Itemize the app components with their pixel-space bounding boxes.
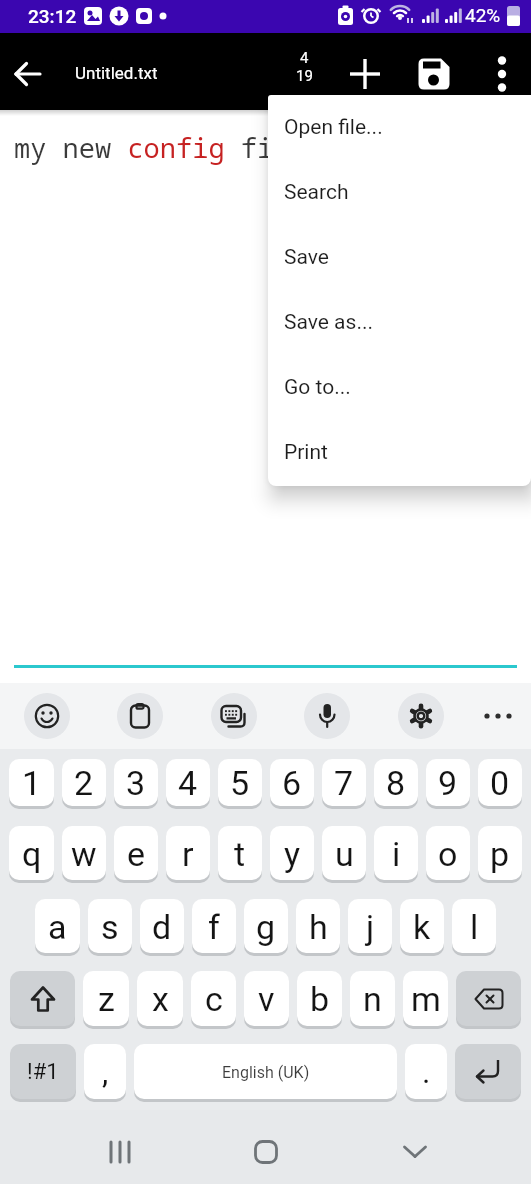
staticText: t bbox=[234, 834, 246, 874]
button[interactable] bbox=[456, 971, 521, 1027]
button[interactable]: k bbox=[400, 899, 444, 954]
staticText: u bbox=[335, 834, 354, 874]
button[interactable]: 8 bbox=[374, 759, 418, 807]
staticText: x bbox=[152, 979, 169, 1019]
staticText: j bbox=[366, 907, 375, 947]
button[interactable]: 0 bbox=[478, 759, 522, 807]
button[interactable] bbox=[398, 693, 444, 739]
staticText: d bbox=[152, 907, 172, 947]
button[interactable]: 4 bbox=[166, 759, 210, 807]
button[interactable]: 7 bbox=[322, 759, 366, 807]
staticText: p bbox=[490, 834, 510, 874]
staticText: o bbox=[438, 834, 458, 874]
button[interactable]: l bbox=[452, 899, 496, 954]
button[interactable] bbox=[24, 693, 70, 739]
button[interactable]: t bbox=[218, 826, 262, 881]
staticText: 4 bbox=[300, 49, 309, 67]
button[interactable]: , bbox=[84, 1044, 126, 1100]
staticText: l bbox=[470, 907, 479, 947]
button[interactable]: c bbox=[191, 971, 236, 1027]
button[interactable]: d bbox=[140, 899, 184, 954]
button[interactable]: b bbox=[297, 971, 342, 1027]
button[interactable] bbox=[117, 693, 163, 739]
staticText: Save bbox=[284, 245, 329, 270]
staticText: y bbox=[284, 834, 301, 874]
button[interactable] bbox=[96, 1128, 144, 1176]
button[interactable]: Go to... bbox=[268, 355, 531, 420]
button[interactable]: q bbox=[9, 826, 54, 881]
button[interactable]: w bbox=[62, 826, 106, 881]
button[interactable] bbox=[455, 1044, 521, 1100]
staticText: 42% bbox=[465, 4, 501, 26]
staticText: r bbox=[182, 834, 194, 874]
staticText: n bbox=[363, 979, 382, 1019]
button[interactable]: 9 bbox=[426, 759, 470, 807]
button[interactable]: a bbox=[35, 899, 80, 954]
button[interactable]: u bbox=[322, 826, 366, 881]
button[interactable]: Save bbox=[268, 225, 531, 290]
button[interactable]: z bbox=[83, 971, 129, 1027]
button[interactable] bbox=[10, 971, 75, 1027]
staticText: 3 bbox=[126, 763, 146, 803]
button[interactable] bbox=[475, 693, 521, 739]
staticText: e bbox=[127, 834, 146, 874]
button[interactable]: 5 bbox=[218, 759, 262, 807]
button[interactable]: g bbox=[244, 899, 288, 954]
staticText: , bbox=[102, 1053, 109, 1091]
button[interactable]: English (UK) bbox=[134, 1044, 397, 1100]
staticText: v bbox=[258, 979, 275, 1019]
staticText: 4 bbox=[178, 763, 198, 803]
staticText: i bbox=[392, 834, 401, 874]
button[interactable]: j bbox=[348, 899, 392, 954]
button[interactable]: Save as... bbox=[268, 290, 531, 355]
button[interactable] bbox=[211, 693, 257, 739]
button[interactable]: y bbox=[270, 826, 314, 881]
button[interactable]: v bbox=[244, 971, 289, 1027]
staticText: 9 bbox=[438, 763, 458, 803]
staticText: . bbox=[422, 1053, 431, 1091]
staticText: s bbox=[101, 907, 119, 947]
button[interactable] bbox=[478, 50, 526, 98]
button[interactable]: i bbox=[374, 826, 418, 881]
staticText: 5 bbox=[230, 763, 250, 803]
staticText: Untitled.txt bbox=[75, 63, 158, 83]
staticText: b bbox=[310, 979, 330, 1019]
staticText: 23:12 bbox=[28, 5, 77, 27]
staticText: k bbox=[413, 907, 431, 947]
button[interactable]: 2 bbox=[62, 759, 106, 807]
staticText: 2 bbox=[74, 763, 94, 803]
button[interactable] bbox=[410, 50, 458, 98]
button[interactable]: r bbox=[166, 826, 210, 881]
staticText: 8 bbox=[386, 763, 406, 803]
staticText: 6 bbox=[282, 763, 302, 803]
staticText: Save as... bbox=[284, 310, 373, 335]
staticText: English (UK) bbox=[222, 1063, 310, 1082]
button[interactable]: o bbox=[426, 826, 470, 881]
button[interactable]: 3 bbox=[114, 759, 158, 807]
button[interactable]: m bbox=[403, 971, 448, 1027]
button[interactable]: n bbox=[350, 971, 395, 1027]
staticText: g bbox=[256, 907, 276, 947]
button[interactable]: 1 bbox=[9, 759, 54, 807]
staticText: 0 bbox=[490, 763, 510, 803]
button[interactable]: s bbox=[88, 899, 132, 954]
button[interactable]: 6 bbox=[270, 759, 314, 807]
button[interactable] bbox=[391, 1128, 439, 1176]
button[interactable]: f bbox=[192, 899, 236, 954]
button[interactable] bbox=[4, 50, 52, 98]
button[interactable]: Print bbox=[268, 420, 531, 485]
button[interactable]: x bbox=[137, 971, 183, 1027]
button[interactable]: h bbox=[296, 899, 340, 954]
button[interactable] bbox=[242, 1128, 290, 1176]
button[interactable]: . bbox=[405, 1044, 447, 1100]
staticText: c bbox=[205, 979, 223, 1019]
button[interactable] bbox=[304, 693, 350, 739]
button[interactable]: p bbox=[478, 826, 522, 881]
button[interactable]: !#1 bbox=[10, 1044, 76, 1100]
staticText: w bbox=[71, 834, 97, 874]
staticText: Search bbox=[284, 180, 349, 205]
button[interactable]: Search bbox=[268, 160, 531, 225]
button[interactable]: e bbox=[114, 826, 158, 881]
button[interactable]: Open file... bbox=[268, 95, 531, 160]
button[interactable] bbox=[341, 50, 389, 98]
